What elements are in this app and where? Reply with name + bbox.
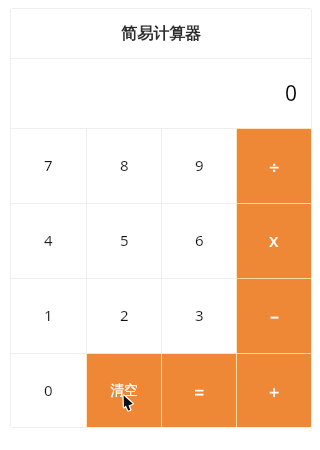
staticText: – [270,304,279,329]
staticText: 清空 [110,382,138,400]
button[interactable]: 4 [11,204,86,278]
button[interactable]: 1 [11,279,86,353]
button[interactable]: 2 [87,279,161,353]
button[interactable]: Divide [237,129,311,203]
staticText: + [269,380,280,405]
button[interactable]: 0 [11,354,86,427]
button[interactable]: Multiply [237,204,311,278]
button[interactable]: 7 [11,129,86,203]
button[interactable]: Add [237,354,311,427]
button[interactable]: 5 [87,204,161,278]
staticText: = [194,380,205,405]
button[interactable]: 清空 [87,354,161,427]
button[interactable]: Subtract [237,279,311,353]
staticText: ÷ [269,155,280,180]
staticText: 5 [120,230,129,250]
staticText: 7 [44,155,53,175]
staticText: 0 [285,79,298,108]
button[interactable]: Equals [162,354,236,427]
staticText: 1 [44,305,53,325]
staticText: x [269,228,279,253]
staticText: 8 [120,155,129,175]
staticText: 0 [44,380,53,400]
staticText: 2 [120,305,129,325]
staticText: 简易计算器 [121,24,201,44]
staticText: 9 [195,155,204,175]
button[interactable]: 9 [162,129,236,203]
staticText: 3 [195,305,204,325]
button[interactable]: 6 [162,204,236,278]
button[interactable]: 3 [162,279,236,353]
staticText: 6 [195,230,204,250]
button[interactable]: 8 [87,129,161,203]
staticText: 4 [44,230,53,250]
